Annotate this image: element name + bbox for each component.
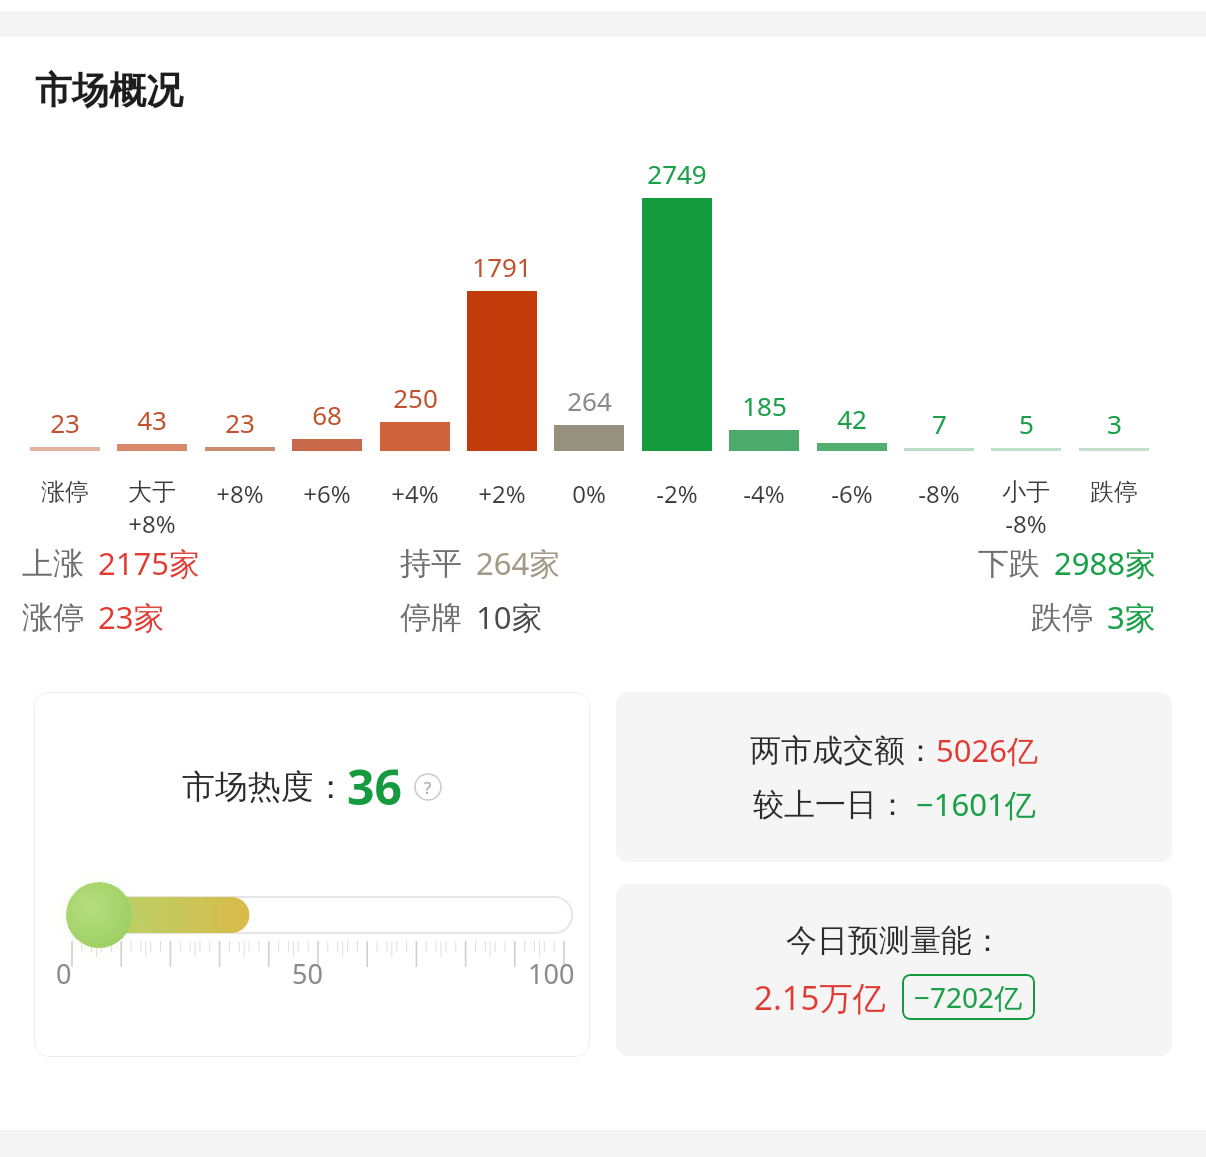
staticText: 市场概况 (35, 67, 183, 114)
staticText: ? (424, 776, 432, 799)
staticText: 小于 (1002, 477, 1050, 507)
staticText: 264家 (476, 542, 561, 584)
staticText: 5026亿 (936, 729, 1038, 771)
button[interactable]: 说明 (414, 773, 442, 801)
staticText: 23家 (98, 596, 165, 638)
staticText: 23 (225, 405, 255, 440)
staticText: 100 (528, 955, 575, 992)
staticText: 7 (932, 406, 947, 441)
staticText: 3家 (1107, 596, 1156, 638)
staticText: 今日预测量能： (786, 921, 1003, 960)
staticText: 42 (837, 401, 867, 436)
button[interactable]: 市场热度： (34, 692, 590, 1057)
staticText: 上涨 (22, 544, 84, 583)
staticText: 68 (312, 397, 342, 432)
staticText: 持平 (400, 544, 462, 583)
staticText: -2% (656, 477, 698, 510)
staticText: 10家 (476, 596, 543, 638)
button[interactable]: 两市成交额： (616, 692, 1172, 862)
staticText: 涨停 (41, 477, 89, 507)
staticText: 涨停 (22, 598, 84, 637)
staticText: 2749 (647, 156, 707, 191)
staticText: 43 (137, 402, 167, 437)
staticText: 跌停 (1090, 477, 1138, 507)
staticText: 5 (1019, 406, 1034, 441)
staticText: 跌停 (1031, 598, 1093, 637)
staticText: 3 (1107, 406, 1122, 441)
staticText: 两市成交额： (750, 731, 936, 770)
staticText: 185 (742, 388, 787, 423)
staticText: 1791 (472, 249, 532, 284)
button[interactable]: 今日预测量能： (616, 884, 1172, 1056)
staticText: 2.15万亿 (754, 975, 886, 1020)
staticText: 2175家 (98, 542, 200, 584)
staticText: 停牌 (400, 598, 462, 637)
staticText: -8% (1005, 507, 1047, 540)
staticText: 264 (567, 383, 612, 418)
staticText: 23 (50, 405, 80, 440)
staticText: 250 (393, 380, 438, 415)
staticText: 0% (572, 477, 606, 510)
staticText: 大于 (128, 477, 176, 507)
staticText: +4% (391, 477, 439, 510)
staticText: -8% (918, 477, 960, 510)
staticText: +8% (216, 477, 264, 510)
staticText: 市场热度： (182, 766, 347, 808)
staticText: −7202亿 (914, 978, 1023, 1016)
staticText: -4% (743, 477, 785, 510)
staticText: +8% (128, 507, 176, 540)
staticText: +6% (303, 477, 351, 510)
staticText: 较上一日： (753, 785, 908, 824)
staticText: 36 (347, 754, 402, 819)
staticText: 2988家 (1054, 542, 1156, 584)
staticText: 50 (292, 955, 323, 992)
staticText: 下跌 (978, 544, 1040, 583)
staticText: +2% (478, 477, 526, 510)
staticText: −1601亿 (908, 783, 1036, 825)
staticText: 0 (56, 955, 72, 992)
staticText: -6% (831, 477, 873, 510)
